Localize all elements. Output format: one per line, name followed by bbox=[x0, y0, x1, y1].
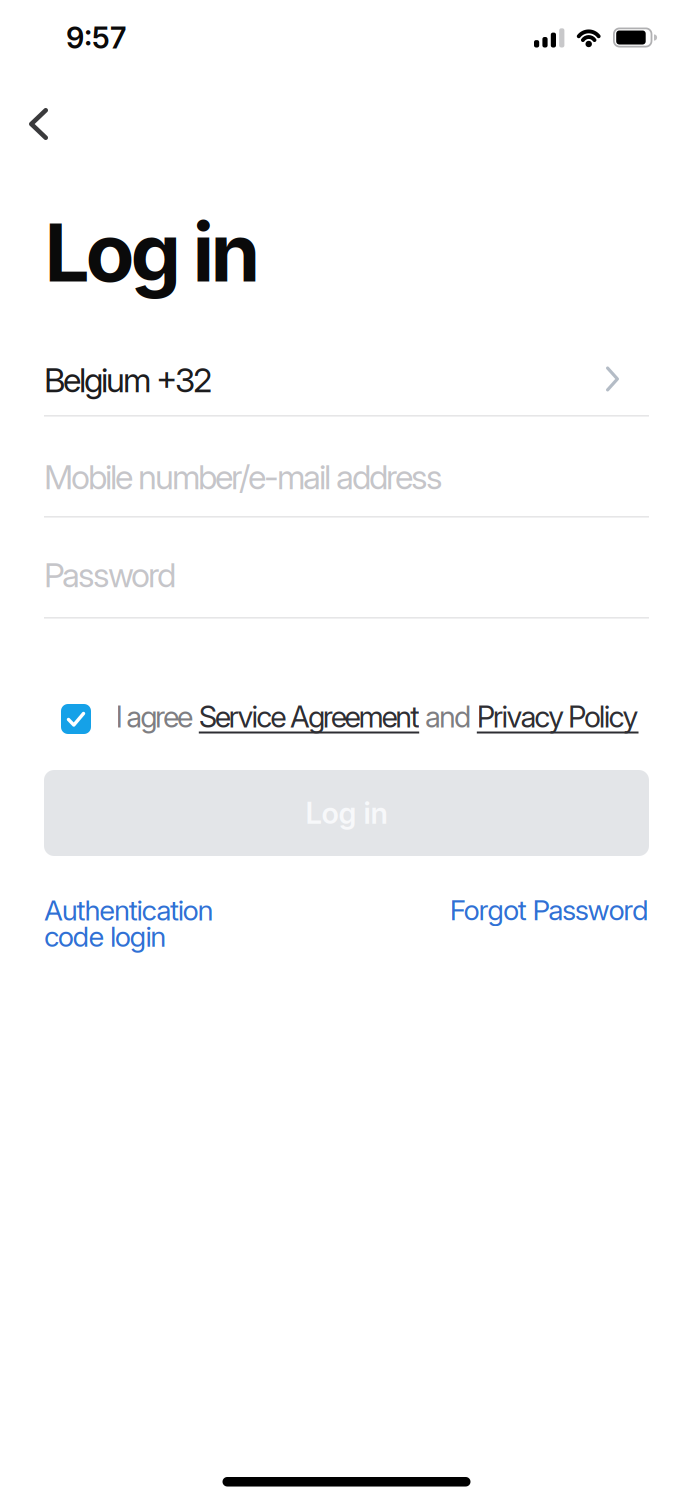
button[interactable]: Privacy Policy bbox=[477, 699, 638, 734]
staticText: Service Agreement bbox=[199, 699, 419, 734]
button[interactable]: Authentication code login bbox=[44, 897, 213, 950]
staticText: Privacy Policy bbox=[477, 699, 638, 734]
button[interactable]: Back bbox=[0, 96, 76, 152]
staticText: Mobile number/e-mail address bbox=[44, 457, 443, 497]
staticText: Log in bbox=[305, 795, 387, 831]
staticText: Belgium +32 bbox=[44, 360, 212, 400]
button[interactable]: Belgium +32 bbox=[44, 360, 650, 400]
staticText: Log in bbox=[44, 204, 260, 301]
staticText: Password bbox=[44, 555, 176, 595]
button[interactable]: Mobile number/e-mail address bbox=[44, 457, 650, 497]
staticText: Forgot Password bbox=[450, 893, 649, 927]
button[interactable]: I agree bbox=[55, 698, 97, 740]
staticText: and bbox=[419, 699, 477, 734]
button[interactable]: Forgot Password bbox=[450, 893, 649, 927]
staticText: I agree bbox=[115, 699, 199, 734]
staticText: 9:57 bbox=[66, 20, 126, 55]
button[interactable]: Service Agreement bbox=[199, 699, 419, 734]
staticText: Authentication code login bbox=[44, 897, 213, 950]
button[interactable]: Password bbox=[44, 555, 650, 595]
